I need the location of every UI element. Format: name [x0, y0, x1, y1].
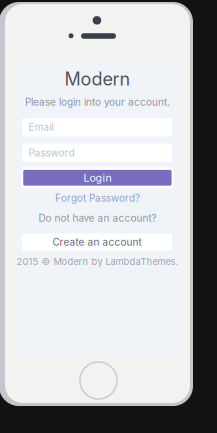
staticText: Please login into your account. [25, 96, 170, 108]
staticText: 2015 © Modern by LambdaThemes. [16, 256, 178, 267]
button[interactable]: Login [21, 167, 173, 188]
staticText: Forgot Password? [55, 192, 140, 204]
staticText: Do not have an account? [38, 212, 156, 224]
staticText: Password [28, 147, 74, 159]
staticText: Login [83, 171, 111, 184]
staticText: Email [28, 121, 53, 133]
staticText: Modern [64, 68, 130, 90]
button[interactable]: Forgot Password? [14, 192, 181, 204]
staticText: Create an account [52, 236, 141, 248]
button[interactable]: Create an account [22, 234, 172, 251]
